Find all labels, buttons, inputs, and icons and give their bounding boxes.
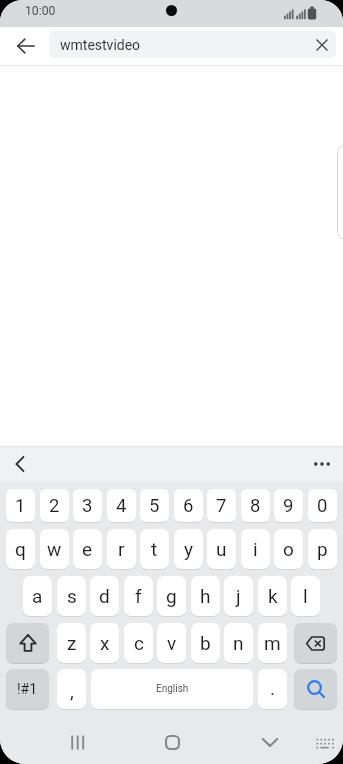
button[interactable] [252,724,288,760]
staticText: u [216,538,227,560]
button[interactable]: u [207,529,236,569]
staticText: x [100,632,110,654]
button[interactable]: g [157,576,186,616]
staticText: f [135,585,142,607]
button[interactable]: English [91,669,253,709]
button[interactable] [6,450,34,478]
staticText: 9 [283,495,294,517]
staticText: b [200,632,211,654]
button[interactable]: 5 [140,489,169,522]
button[interactable]: 1 [6,489,35,522]
button[interactable] [308,450,336,478]
button[interactable]: q [6,529,35,569]
button[interactable]: s [57,576,86,616]
button[interactable] [154,724,190,760]
staticText: 1 [15,495,26,517]
button[interactable]: m [258,623,287,663]
button[interactable]: f [124,576,153,616]
button[interactable]: 6 [174,489,203,522]
staticText: i [253,538,258,560]
button[interactable] [309,32,335,58]
staticText: . [270,677,276,699]
button[interactable]: y [174,529,203,569]
staticText: 7 [216,495,227,517]
button[interactable]: 7 [207,489,236,522]
staticText: n [233,632,244,654]
button[interactable]: n [224,623,253,663]
staticText: m [264,632,281,654]
staticText: y [184,538,193,560]
staticText: s [67,585,77,607]
staticText: 10:00 [25,4,56,18]
staticText: e [82,538,93,560]
staticText: 6 [183,495,194,517]
button[interactable]: wmtestvideo [49,31,336,58]
button[interactable]: 3 [73,489,102,522]
staticText: q [15,538,26,560]
staticText: d [99,585,110,607]
button[interactable] [8,28,44,64]
button[interactable]: c [124,623,153,663]
button[interactable] [294,669,337,709]
staticText: t [151,538,158,560]
button[interactable]: d [90,576,119,616]
staticText: 5 [149,495,160,517]
button[interactable]: h [191,576,220,616]
button[interactable]: 2 [40,489,69,522]
button[interactable] [308,730,340,756]
staticText: a [32,585,43,607]
staticText: j [236,585,241,607]
button[interactable]: , [57,669,86,709]
staticText: l [303,585,308,607]
staticText: g [166,585,177,607]
button[interactable]: x [90,623,119,663]
button[interactable]: o [274,529,303,569]
button[interactable]: r [107,529,136,569]
button[interactable]: j [224,576,253,616]
staticText: English [156,683,189,695]
staticText: 8 [250,495,261,517]
staticText: v [167,632,177,654]
staticText: p [317,538,328,560]
staticText: , [70,680,74,702]
button[interactable] [6,623,49,663]
button[interactable]: 8 [241,489,270,522]
staticText: c [134,632,144,654]
button[interactable] [294,623,337,663]
button[interactable]: z [57,623,86,663]
button[interactable]: 9 [274,489,303,522]
staticText: 2 [49,495,60,517]
button[interactable]: . [258,669,287,709]
button[interactable] [59,724,95,760]
staticText: z [67,632,77,654]
staticText: wmtestvideo [60,37,141,53]
staticText: r [118,538,125,560]
button[interactable]: l [291,576,320,616]
staticText: w [47,538,62,560]
button[interactable]: w [40,529,69,569]
button[interactable]: k [258,576,287,616]
button[interactable]: v [157,623,186,663]
button[interactable]: b [191,623,220,663]
button[interactable]: e [73,529,102,569]
staticText: !#1 [17,681,38,697]
button[interactable]: 4 [107,489,136,522]
staticText: 3 [82,495,93,517]
staticText: h [200,585,211,607]
button[interactable]: 0 [308,489,337,522]
staticText: 0 [317,495,328,517]
button[interactable]: a [23,576,52,616]
staticText: o [283,538,294,560]
staticText: 4 [116,495,127,517]
button[interactable]: t [140,529,169,569]
button[interactable]: i [241,529,270,569]
button[interactable]: !#1 [6,669,49,709]
button[interactable]: p [308,529,337,569]
staticText: k [268,585,278,607]
